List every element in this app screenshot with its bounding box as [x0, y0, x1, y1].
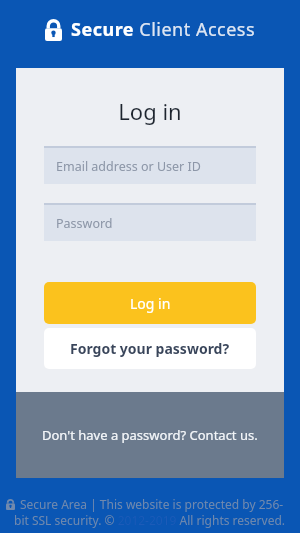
staticText: Don't have a password? Contact us. — [42, 426, 258, 444]
staticText: Secure Area | This website is protected … — [20, 496, 284, 512]
button[interactable]: Forgot your password? — [44, 328, 256, 369]
button[interactable]: Email address or User ID — [44, 148, 256, 184]
button[interactable]: Password — [44, 205, 256, 241]
staticText: Log in — [44, 96, 256, 126]
staticText: bit SSL security. © 2012-2019 All rights… — [14, 512, 286, 528]
staticText: Log in — [130, 294, 171, 313]
staticText: Password — [56, 215, 113, 232]
button[interactable]: Log in — [44, 282, 256, 324]
staticText: Forgot your password? — [70, 339, 230, 358]
staticText: Email address or User ID — [56, 158, 201, 175]
button[interactable]: Don't have a password? Contact us. — [16, 392, 284, 478]
staticText: Secure Client Access — [71, 17, 256, 42]
